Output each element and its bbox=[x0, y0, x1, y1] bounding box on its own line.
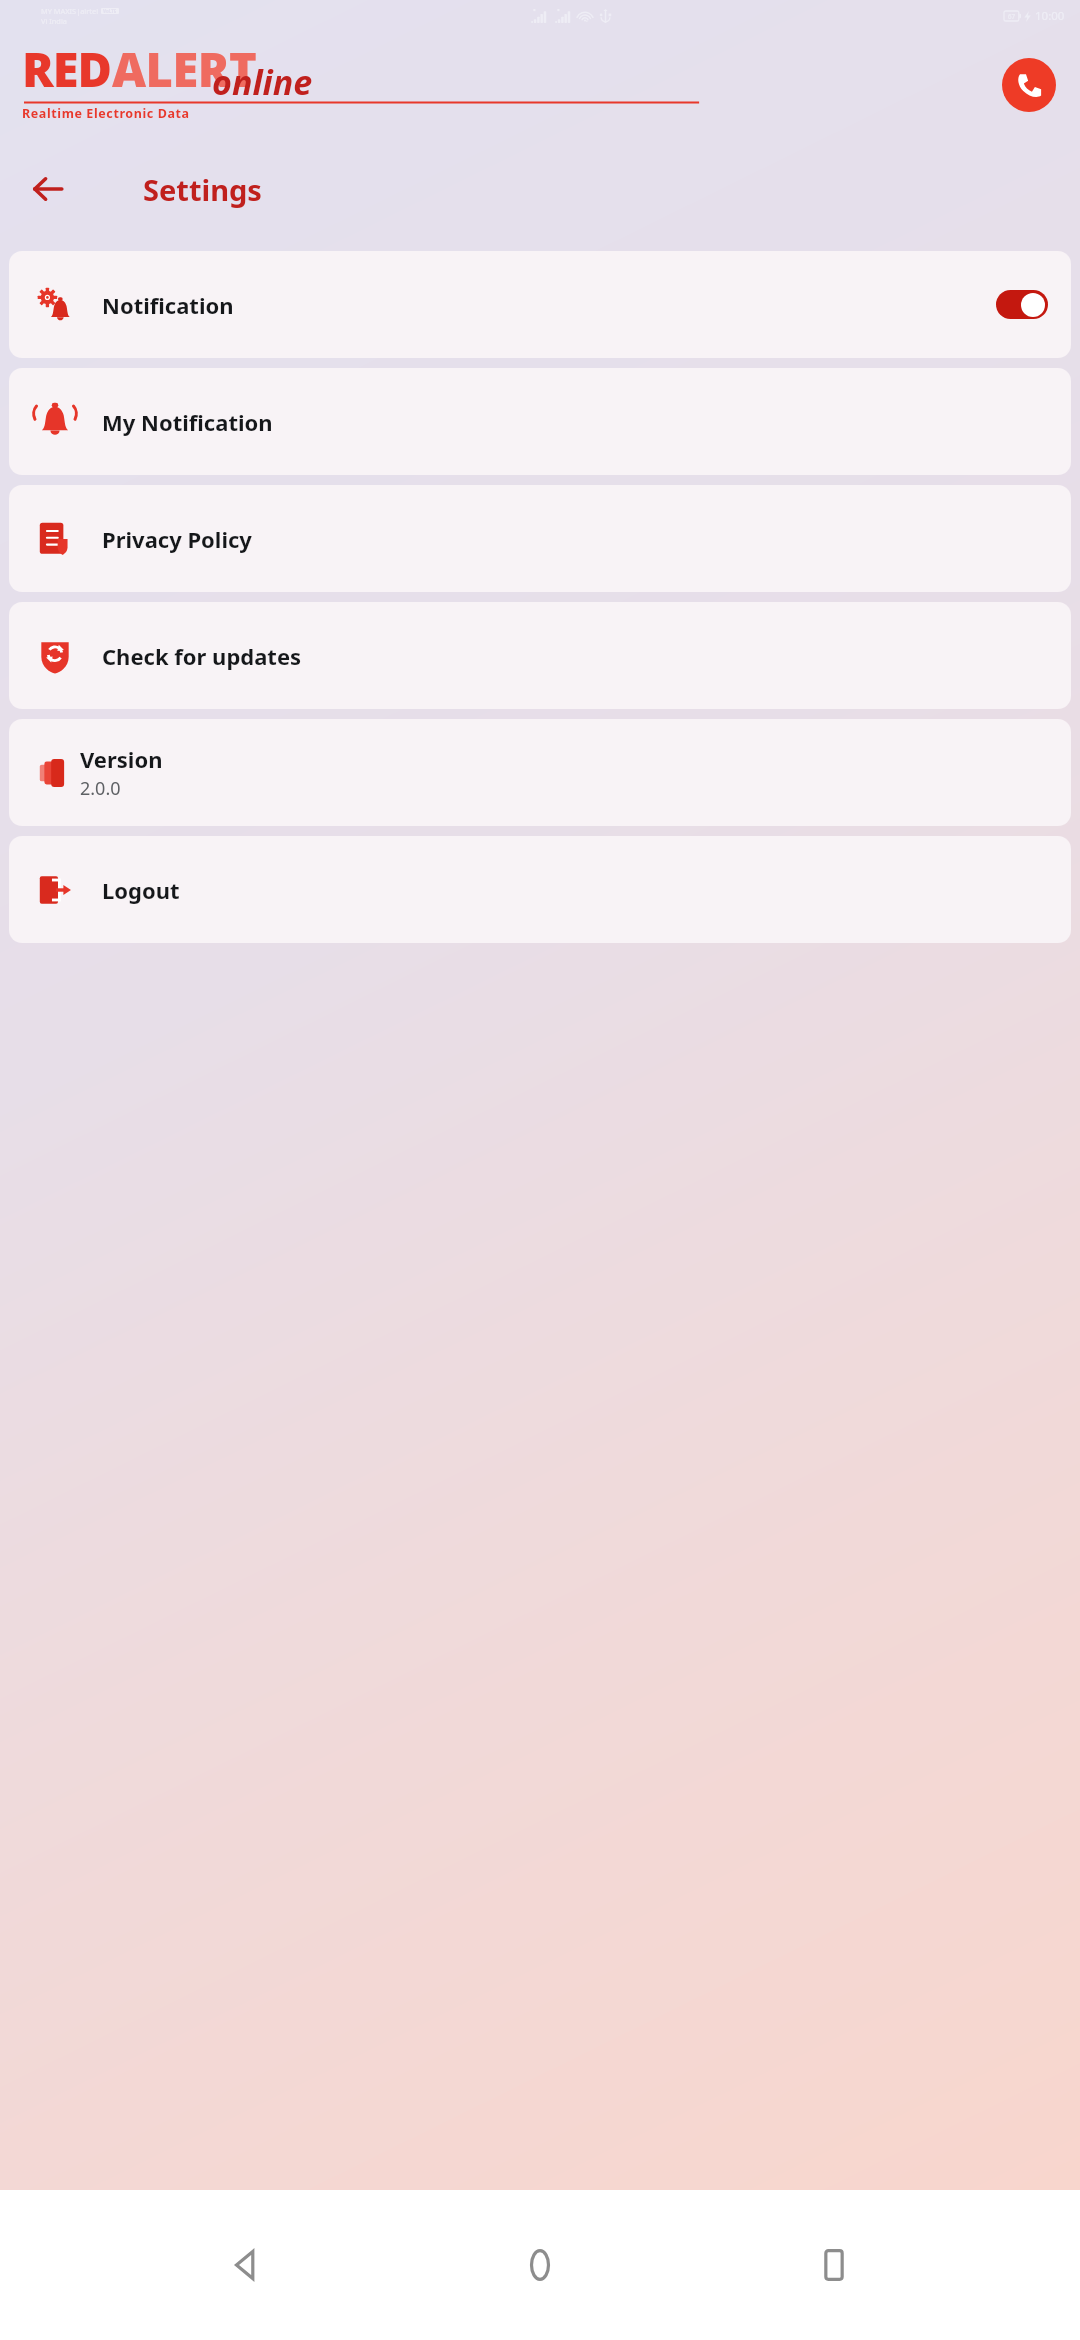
button[interactable]: Check for updates bbox=[9, 602, 1071, 709]
button[interactable]: Notification toggle bbox=[996, 290, 1048, 319]
button[interactable]: Version bbox=[9, 719, 1071, 826]
button[interactable]: Back bbox=[22, 163, 74, 215]
staticText: Logout bbox=[102, 875, 180, 905]
button[interactable]: Logout bbox=[9, 836, 1071, 943]
staticText: 10:00 bbox=[1035, 8, 1065, 24]
staticText: Version bbox=[80, 744, 163, 774]
staticText: Notification bbox=[102, 290, 234, 320]
staticText: MY MAXIS|airtel bbox=[41, 6, 99, 16]
button[interactable]: Recent apps bbox=[786, 2217, 882, 2313]
staticText: ALERT bbox=[112, 37, 257, 101]
staticText: My Notification bbox=[102, 407, 273, 437]
button[interactable]: Back bbox=[198, 2217, 294, 2313]
button[interactable]: Home bbox=[492, 2217, 588, 2313]
button[interactable]: Privacy Policy bbox=[9, 485, 1071, 592]
staticText: Vi India bbox=[41, 16, 67, 26]
staticText: RED bbox=[22, 37, 112, 101]
staticText: 67 bbox=[1008, 12, 1016, 20]
staticText: online bbox=[212, 59, 313, 105]
button[interactable]: My Notification bbox=[9, 368, 1071, 475]
button[interactable]: Notification bbox=[9, 251, 1071, 358]
staticText: 2.0.0 bbox=[80, 776, 121, 801]
staticText: Settings bbox=[143, 170, 262, 209]
staticText: Check for updates bbox=[102, 641, 302, 671]
staticText: Privacy Policy bbox=[102, 524, 252, 554]
staticText: VoLTE bbox=[103, 8, 117, 14]
staticText: Realtime Electronic Data bbox=[22, 105, 190, 122]
button[interactable]: Call bbox=[1002, 58, 1056, 112]
